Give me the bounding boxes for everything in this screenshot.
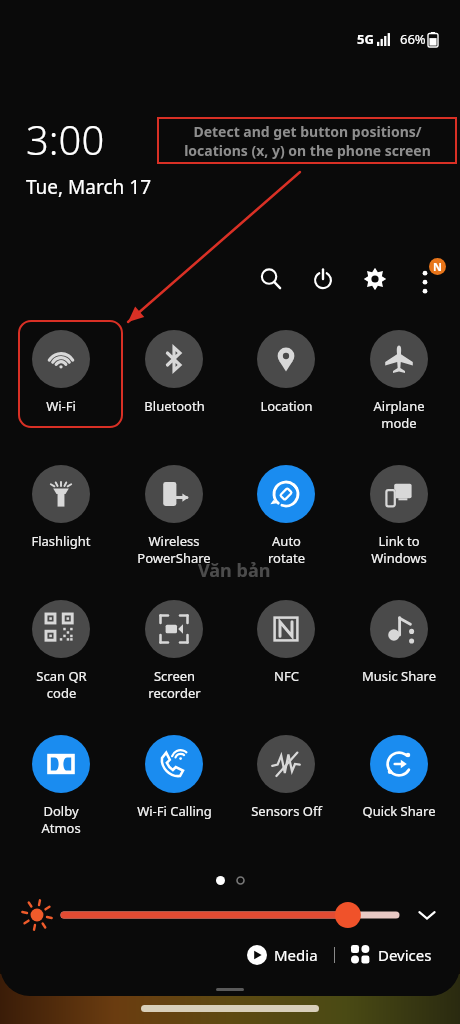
button[interactable]: Search xyxy=(256,264,286,294)
staticText: 3:00 xyxy=(26,112,105,166)
button[interactable]: Wi-Fi xyxy=(10,330,112,415)
staticText: Wi-Fi xyxy=(46,397,76,415)
button[interactable]: More options xyxy=(408,262,442,296)
staticText: Location xyxy=(260,397,313,415)
button[interactable]: Scan QR code xyxy=(10,600,112,702)
button[interactable]: Dolby Atmos xyxy=(10,735,112,837)
button[interactable]: Screen recorder xyxy=(123,600,225,702)
button[interactable]: Quick Share xyxy=(348,735,450,820)
staticText: 5G xyxy=(357,30,374,48)
button[interactable]: Expand brightness settings xyxy=(410,898,444,932)
staticText: Wi-Fi Calling xyxy=(137,802,212,820)
button[interactable]: Wireless PowerShare xyxy=(123,465,225,567)
button[interactable]: Music Share xyxy=(348,600,450,685)
button[interactable]: Power xyxy=(308,264,338,294)
button[interactable]: Settings xyxy=(360,264,390,294)
staticText: Wireless PowerShare xyxy=(137,532,211,567)
staticText: Văn bản xyxy=(198,558,271,583)
staticText: Devices xyxy=(378,945,432,965)
button[interactable]: Media xyxy=(247,945,318,965)
staticText: NFC xyxy=(274,667,299,685)
staticText: Auto rotate xyxy=(268,532,305,567)
staticText: Music Share xyxy=(362,667,436,685)
staticText: Dolby Atmos xyxy=(41,802,81,837)
staticText: Flashlight xyxy=(31,532,91,550)
staticText: N xyxy=(433,259,442,274)
staticText: 66% xyxy=(400,30,426,48)
button[interactable]: Auto rotate xyxy=(235,465,337,567)
staticText: Quick Share xyxy=(362,802,436,820)
staticText: Detect and get button positions/ locatio… xyxy=(184,122,431,160)
staticText: Tue, March 17 xyxy=(26,174,152,200)
staticText: Sensors Off xyxy=(251,802,322,820)
button[interactable]: Brightness xyxy=(64,902,396,928)
staticText: Media xyxy=(274,945,318,965)
button[interactable]: Wi-Fi Calling xyxy=(123,735,225,820)
button[interactable]: Sensors Off xyxy=(235,735,337,820)
button[interactable]: Bluetooth xyxy=(123,330,225,415)
button[interactable]: NFC xyxy=(235,600,337,685)
staticText: Bluetooth xyxy=(144,397,205,415)
button[interactable]: Link to Windows xyxy=(348,465,450,567)
button[interactable]: Location xyxy=(235,330,337,415)
button[interactable]: Flashlight xyxy=(10,465,112,550)
staticText: Scan QR code xyxy=(36,667,87,702)
staticText: Link to Windows xyxy=(371,532,427,567)
staticText: Airplane mode xyxy=(373,397,425,432)
button[interactable]: Devices xyxy=(351,945,432,965)
button[interactable]: Airplane mode xyxy=(348,330,450,432)
staticText: Screen recorder xyxy=(148,667,201,702)
